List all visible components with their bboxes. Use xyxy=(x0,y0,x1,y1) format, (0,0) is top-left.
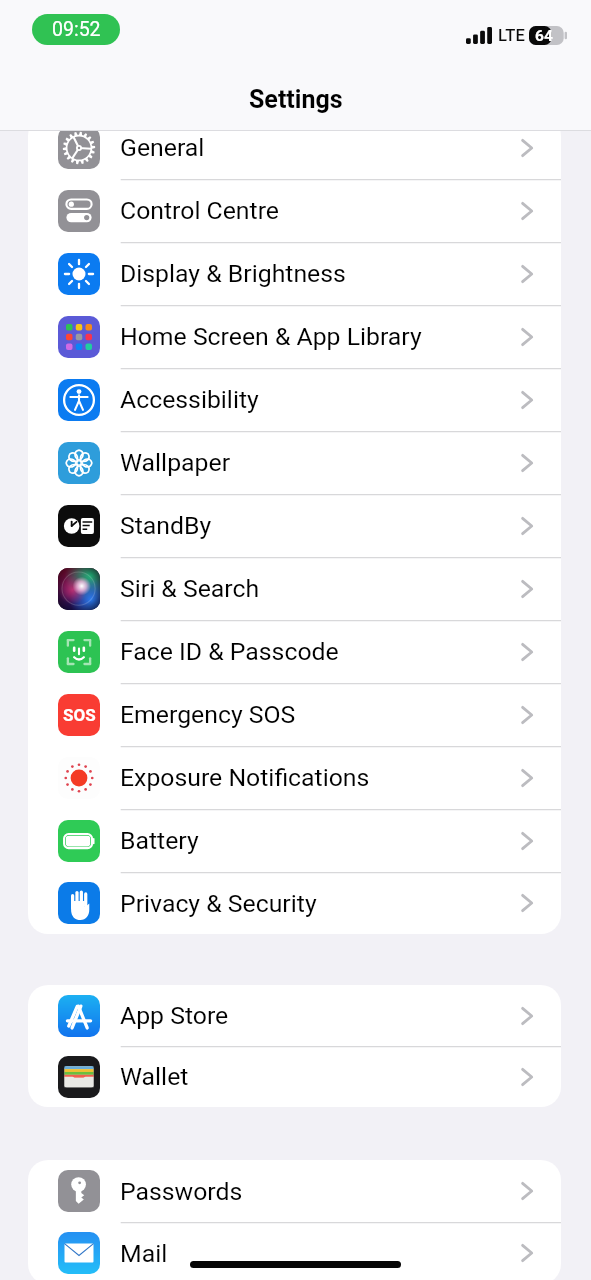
button[interactable]: Face ID & Passcode xyxy=(28,620,561,683)
staticText: General xyxy=(120,133,205,162)
button[interactable]: App Store xyxy=(28,985,561,1046)
staticText: Battery xyxy=(120,826,199,855)
button[interactable]: Home Screen & App Library xyxy=(28,305,561,368)
staticText: Settings xyxy=(249,85,343,114)
button[interactable]: SOS xyxy=(28,683,561,746)
button[interactable]: Display & Brightness xyxy=(28,242,561,305)
button[interactable]: Recording indicator, 09:52 xyxy=(32,14,120,45)
staticText: Wallet xyxy=(120,1062,189,1091)
button[interactable]: Control Centre xyxy=(28,179,561,242)
button[interactable]: Wallpaper xyxy=(28,431,561,494)
staticText: Passwords xyxy=(120,1177,243,1206)
staticText: Control Centre xyxy=(120,196,279,225)
button[interactable]: StandBy xyxy=(28,494,561,557)
button[interactable]: Wallet xyxy=(28,1046,561,1107)
button[interactable]: Mail xyxy=(28,1222,561,1280)
staticText: 09:52 xyxy=(52,18,101,41)
staticText: Accessibility xyxy=(120,385,259,414)
button[interactable]: Siri & Search xyxy=(28,557,561,620)
staticText: Exposure Notifications xyxy=(120,763,370,792)
other: Cellular signal strength xyxy=(466,27,492,44)
button[interactable]: Exposure Notifications xyxy=(28,746,561,809)
button[interactable]: General xyxy=(28,116,561,179)
button[interactable]: Passwords xyxy=(28,1160,561,1222)
staticText: Emergency SOS xyxy=(120,700,296,729)
staticText: Home Screen & App Library xyxy=(120,322,422,351)
staticText: StandBy xyxy=(120,511,212,540)
button[interactable]: Home indicator xyxy=(190,1261,401,1268)
staticText: Mail xyxy=(120,1239,168,1268)
button[interactable]: Privacy & Security xyxy=(28,872,561,934)
staticText: Face ID & Passcode xyxy=(120,637,339,666)
staticText: Display & Brightness xyxy=(120,259,346,288)
staticText: Privacy & Security xyxy=(120,889,317,918)
staticText: SOS xyxy=(63,705,96,725)
other: Battery 64 percent xyxy=(529,26,567,45)
staticText: 64 xyxy=(535,27,553,45)
button[interactable]: Accessibility xyxy=(28,368,561,431)
staticText: LTE xyxy=(498,26,525,45)
button[interactable]: Battery xyxy=(28,809,561,872)
staticText: Wallpaper xyxy=(120,448,231,477)
staticText: Siri & Search xyxy=(120,574,260,603)
staticText: App Store xyxy=(120,1001,229,1030)
